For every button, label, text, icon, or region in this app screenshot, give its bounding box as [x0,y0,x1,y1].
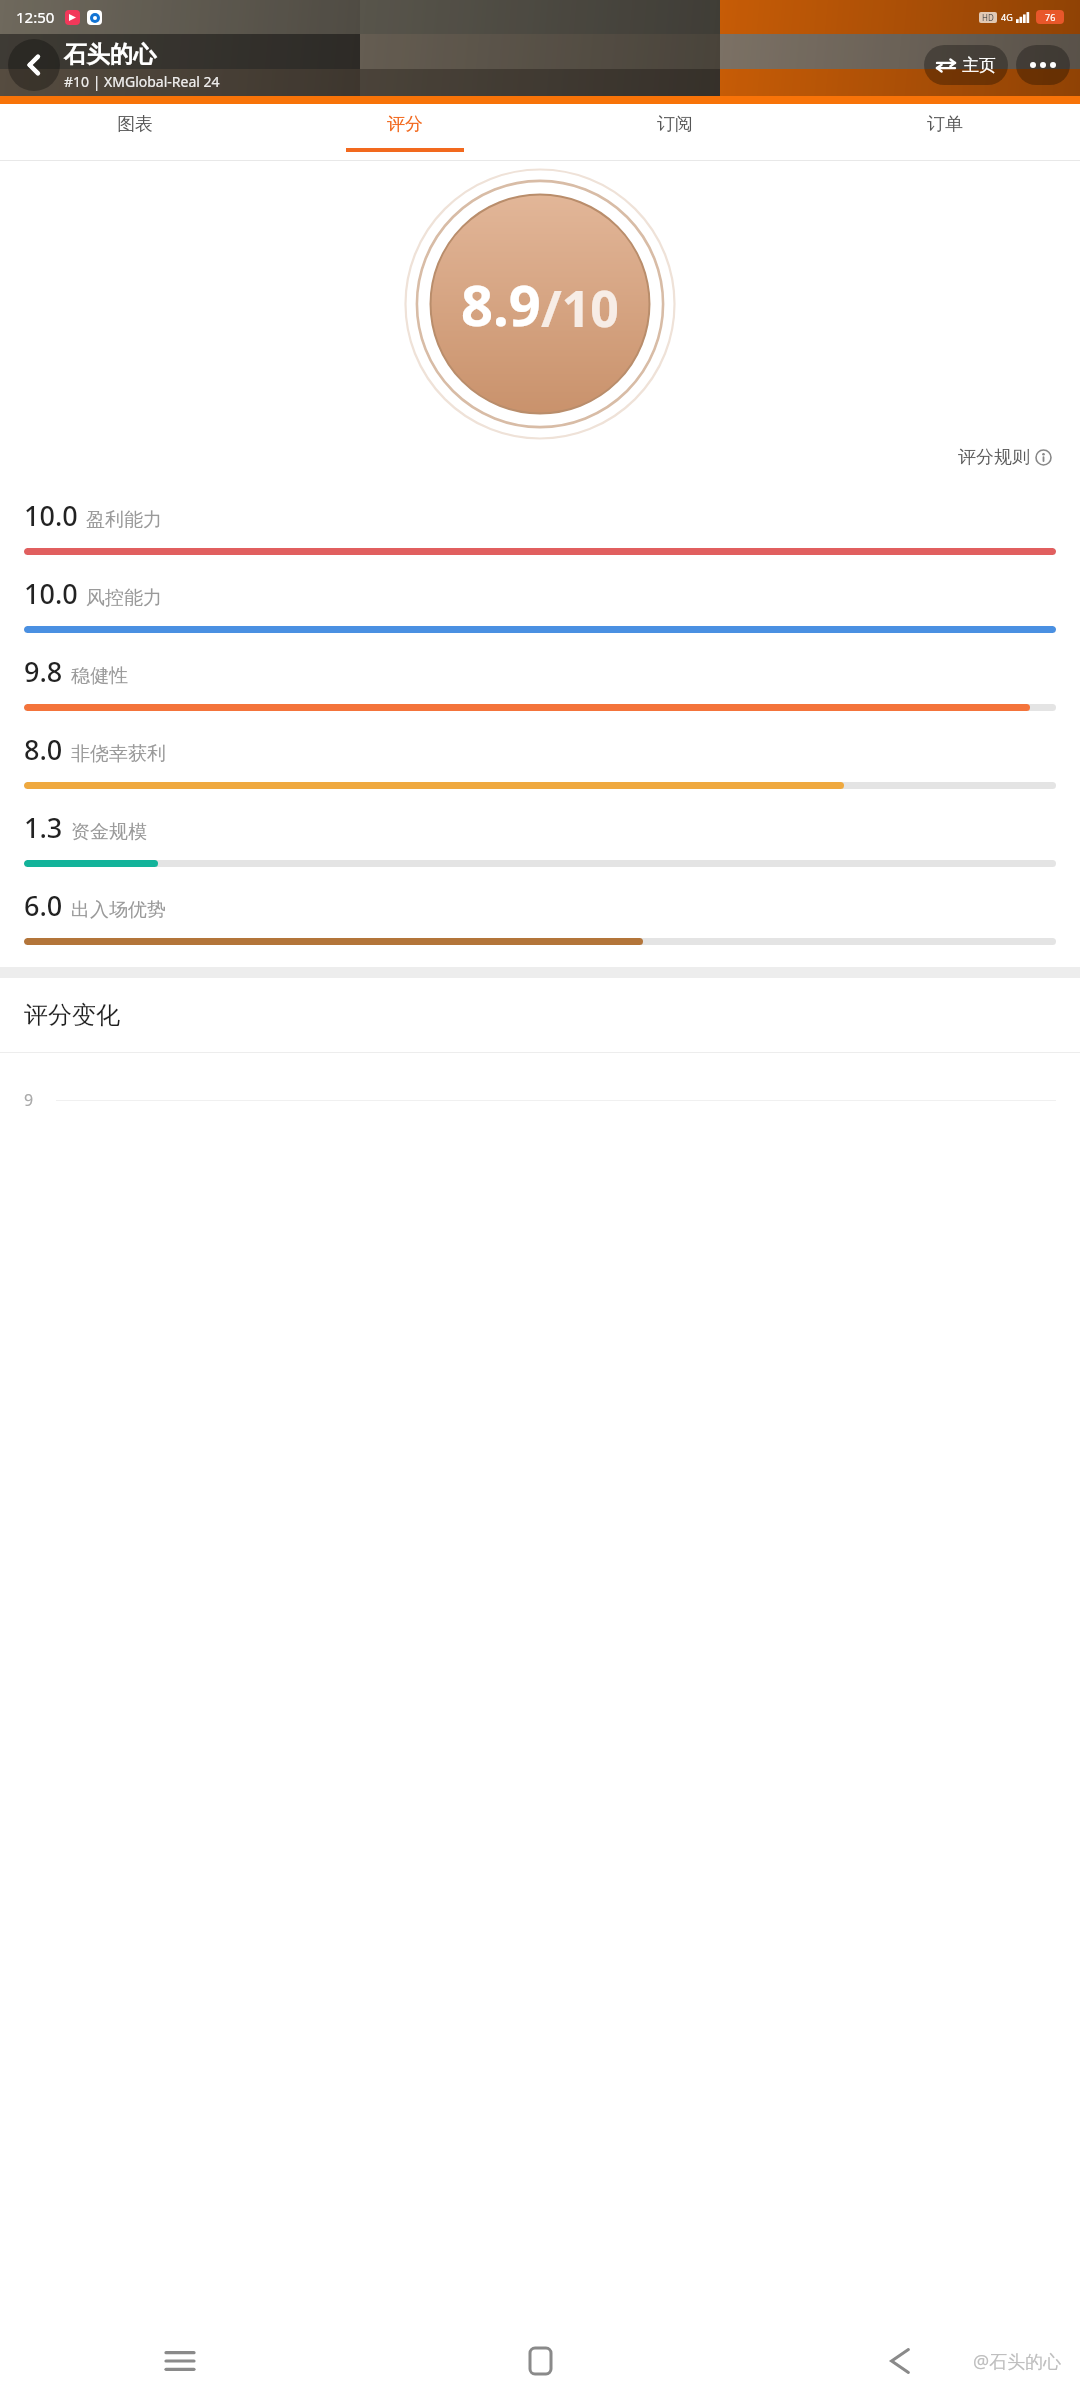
button[interactable]: 9.8 [0,637,1080,715]
button[interactable]: 订阅 [540,104,810,161]
staticText: 10.0 [24,575,78,612]
staticText: 12:50 [16,7,55,27]
button[interactable]: 主屏幕 [360,2322,720,2400]
staticText: 8.9 [461,266,541,342]
staticText: 1.3 [24,809,63,846]
staticText: @石头的心 [973,2349,1062,2374]
staticText: 评分规则 [958,446,1030,469]
staticText: 4G [1001,11,1013,23]
staticText: /10 [541,274,619,342]
staticText: 9 [24,1089,34,1111]
staticText: 10.0 [24,497,78,534]
button[interactable]: 8.0 [0,715,1080,793]
button[interactable]: 最近任务 [0,2322,360,2400]
button[interactable]: 10.0 [0,481,1080,559]
staticText: 风控能力 [86,586,162,610]
button[interactable]: 1.3 [0,793,1080,871]
staticText: 非侥幸获利 [71,742,166,766]
button[interactable]: 订单 [810,104,1080,161]
button[interactable]: 主页 [924,45,1008,85]
button[interactable]: 评分 [270,104,540,161]
button[interactable]: 6.0 [0,871,1080,949]
staticText: 资金规模 [71,820,147,844]
staticText: 出入场优势 [71,898,166,922]
button[interactable]: 评分规则 [958,446,1052,469]
button[interactable]: 图表 [0,104,270,161]
button[interactable]: 更多 [1016,45,1070,85]
staticText: #10 | XMGlobal-Real 24 [64,72,220,91]
staticText: 76 [1045,11,1056,23]
staticText: 9.8 [24,653,63,690]
staticText: 订单 [927,113,963,136]
staticText: 评分 [387,113,423,136]
staticText: 主页 [962,55,996,76]
staticText: 图表 [117,113,153,136]
button[interactable]: 10.0 [0,559,1080,637]
button[interactable]: 返回 [8,39,60,91]
staticText: 稳健性 [71,664,128,688]
staticText: 订阅 [657,113,693,136]
staticText: 6.0 [24,887,63,924]
staticText: 8.0 [24,731,63,768]
staticText: 石头的心 [64,40,156,69]
staticText: 评分变化 [24,1000,120,1030]
staticText: HD [982,12,994,23]
button[interactable]: 返回 [720,2322,1080,2400]
staticText: 盈利能力 [86,508,162,532]
